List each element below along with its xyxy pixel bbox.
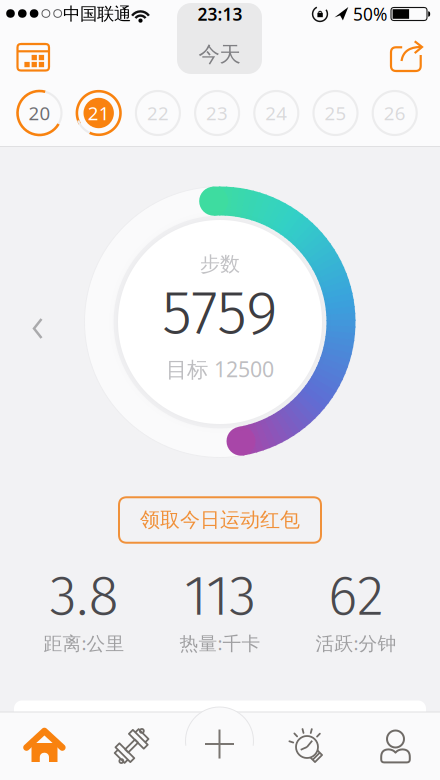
staticText: 26 <box>384 101 406 125</box>
staticText: 23:13 <box>197 2 242 25</box>
staticText: 24 <box>265 101 287 125</box>
button[interactable]: 25 <box>311 89 359 137</box>
staticText: 3.8 <box>49 562 118 630</box>
staticText: 5759 <box>162 276 278 350</box>
button[interactable] <box>0 712 88 780</box>
staticText: 热量:千卡 <box>179 631 260 655</box>
button[interactable]: 21 <box>75 89 123 137</box>
button[interactable]: 20 <box>15 89 63 137</box>
staticText: 25 <box>324 101 346 125</box>
staticText: 步数 <box>200 252 240 276</box>
staticText: 62 <box>328 562 384 630</box>
staticText: 距离:公里 <box>43 631 124 655</box>
staticText: 今天 <box>198 41 240 68</box>
staticText: 中国联通 <box>63 3 131 25</box>
staticText: 21 <box>88 101 110 125</box>
staticText: 目标 12500 <box>166 355 274 383</box>
button[interactable] <box>10 37 58 81</box>
button[interactable] <box>382 35 430 79</box>
staticText: 活跃:分钟 <box>315 631 396 655</box>
button[interactable]: 领取今日运动红包 <box>118 496 322 544</box>
staticText: 22 <box>147 101 169 125</box>
button[interactable]: 今天 <box>177 3 262 74</box>
button[interactable] <box>88 712 176 780</box>
staticText: 领取今日运动红包 <box>140 508 300 532</box>
button[interactable]: 23 <box>193 89 241 137</box>
staticText: 50% <box>353 2 387 25</box>
staticText: 23 <box>206 101 228 125</box>
button[interactable]: 22 <box>134 89 182 137</box>
button[interactable] <box>175 711 263 779</box>
button[interactable]: 26 <box>371 89 419 137</box>
button[interactable] <box>263 712 351 780</box>
button[interactable] <box>351 712 439 780</box>
button[interactable]: 24 <box>252 89 300 137</box>
staticText: 113 <box>184 562 256 630</box>
staticText: 20 <box>28 101 50 125</box>
button[interactable] <box>16 298 60 358</box>
